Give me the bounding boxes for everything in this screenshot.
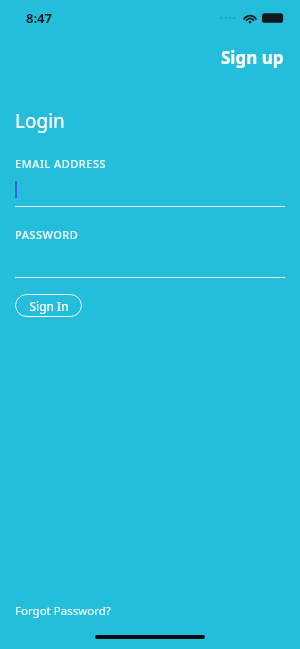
staticText: 8:47 xyxy=(26,9,52,27)
button[interactable] xyxy=(15,242,285,278)
button[interactable]: Sign In xyxy=(15,294,82,317)
staticText: Sign up xyxy=(221,46,284,69)
button[interactable]: Forgot Password? xyxy=(0,599,126,623)
staticText: Sign In xyxy=(29,298,69,314)
button[interactable] xyxy=(15,171,285,207)
staticText: Login xyxy=(15,108,65,134)
staticText: EMAIL ADDRESS xyxy=(15,156,107,171)
staticText: Forgot Password? xyxy=(15,603,111,619)
button[interactable]: Sign up xyxy=(205,36,300,79)
staticText: PASSWORD xyxy=(15,227,79,242)
